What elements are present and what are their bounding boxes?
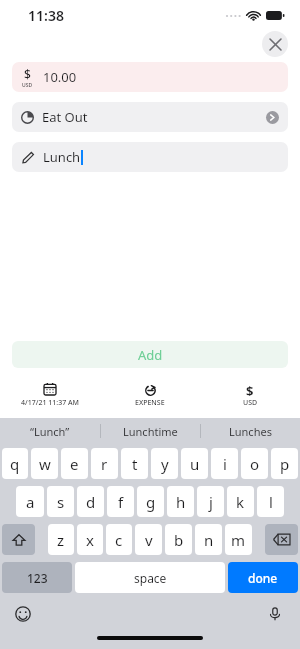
button[interactable]: Add <box>12 341 288 368</box>
button[interactable]: n <box>195 524 222 555</box>
button[interactable]: Close <box>262 31 288 57</box>
button[interactable]: i <box>211 448 238 479</box>
staticText: USD <box>243 398 258 408</box>
button[interactable]: y <box>151 448 178 479</box>
staticText: r <box>101 454 108 474</box>
staticText: b <box>174 530 184 550</box>
staticText: Add <box>138 346 163 364</box>
staticText: h <box>176 492 186 512</box>
staticText: k <box>236 492 245 512</box>
staticText: v <box>145 530 153 550</box>
staticText: f <box>118 492 124 512</box>
staticText: 123 <box>27 570 48 586</box>
button[interactable]: m <box>225 524 252 555</box>
button[interactable]: p <box>271 448 298 479</box>
staticText: c <box>115 530 123 550</box>
button[interactable]: Dictation <box>266 605 284 623</box>
button[interactable]: Lunchtime <box>101 418 200 444</box>
button[interactable]: a <box>16 486 44 517</box>
staticText: i <box>223 454 227 474</box>
button[interactable]: v <box>135 524 162 555</box>
button[interactable]: done <box>228 562 298 593</box>
staticText: Lunches <box>229 424 272 439</box>
staticText: $ <box>24 66 31 82</box>
button[interactable]: r <box>91 448 118 479</box>
staticText: m <box>231 530 246 550</box>
button[interactable]: f <box>107 486 134 517</box>
staticText: u <box>190 454 200 474</box>
button[interactable]: o <box>241 448 268 479</box>
staticText: a <box>26 492 35 512</box>
staticText: p <box>280 454 290 474</box>
button[interactable]: z <box>48 524 74 555</box>
button[interactable]: g <box>137 486 164 517</box>
button[interactable]: w <box>31 448 58 479</box>
staticText: e <box>70 454 79 474</box>
button[interactable]: $ <box>12 62 288 92</box>
button[interactable]: d <box>77 486 104 517</box>
staticText: x <box>86 530 94 550</box>
staticText: j <box>209 492 213 512</box>
staticText: “Lunch” <box>30 424 70 439</box>
button[interactable]: EXPENSE <box>100 380 200 410</box>
staticText: o <box>250 454 260 474</box>
button[interactable]: Shift <box>2 524 35 555</box>
button[interactable]: t <box>121 448 148 479</box>
staticText: d <box>86 492 96 512</box>
staticText: y <box>161 454 169 474</box>
button[interactable]: h <box>167 486 194 517</box>
button[interactable]: space <box>75 562 225 593</box>
button[interactable]: Lunch <box>12 142 288 172</box>
staticText: Eat Out <box>42 108 88 126</box>
button[interactable]: Backspace <box>265 524 298 555</box>
staticText: 4/17/21 11:37 AM <box>21 398 79 408</box>
button[interactable]: e <box>61 448 88 479</box>
staticText: USD <box>22 82 33 89</box>
staticText: z <box>57 530 65 550</box>
staticText: Lunchtime <box>123 424 178 439</box>
staticText: 11:38 <box>28 6 64 25</box>
button[interactable]: Lunches <box>201 418 300 444</box>
button[interactable]: Eat Out <box>12 102 288 132</box>
button[interactable]: x <box>77 524 103 555</box>
staticText: 10.00 <box>43 68 77 86</box>
button[interactable]: b <box>165 524 192 555</box>
staticText: $ <box>246 382 254 396</box>
button[interactable]: u <box>181 448 208 479</box>
staticText: g <box>146 492 156 512</box>
button[interactable]: k <box>227 486 254 517</box>
button[interactable]: s <box>47 486 74 517</box>
button[interactable]: “Lunch” <box>0 418 100 444</box>
staticText: Lunch <box>43 148 81 166</box>
staticText: space <box>134 570 167 586</box>
staticText: EXPENSE <box>135 398 165 408</box>
staticText: w <box>39 454 51 474</box>
button[interactable]: 123 <box>2 562 72 593</box>
button[interactable]: c <box>106 524 132 555</box>
button[interactable]: Emoji <box>14 605 32 623</box>
staticText: done <box>248 570 278 586</box>
button[interactable]: j <box>197 486 224 517</box>
button[interactable]: 4/17/21 11:37 AM <box>0 380 100 410</box>
button[interactable]: l <box>257 486 284 517</box>
button[interactable]: q <box>2 448 28 479</box>
staticText: s <box>57 492 65 512</box>
staticText: n <box>204 530 214 550</box>
staticText: l <box>269 492 273 512</box>
staticText: q <box>10 454 20 474</box>
staticText: t <box>132 454 138 474</box>
button[interactable]: $ <box>200 380 300 410</box>
